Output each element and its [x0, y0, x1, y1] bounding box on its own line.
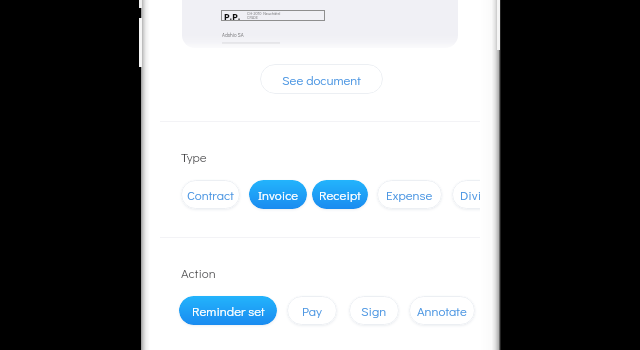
button[interactable]: Contract: [181, 180, 240, 209]
staticText: Pay: [302, 302, 322, 319]
button[interactable]: Annotate: [409, 296, 475, 325]
button[interactable]: Reminder set: [179, 296, 277, 325]
staticText: Action: [181, 264, 216, 281]
staticText: P.P.: [224, 11, 241, 24]
staticText: Reminder set: [192, 302, 265, 319]
button[interactable]: Invoice: [249, 180, 307, 209]
staticText: Type: [181, 148, 207, 165]
button[interactable]: Dividend: [452, 180, 480, 209]
staticText: CH-2010 Neuchâtel: [247, 11, 281, 16]
staticText: Sign: [361, 302, 387, 319]
button[interactable]: Pay: [287, 296, 337, 325]
button[interactable]: See document: [260, 64, 383, 94]
staticText: Annotate: [417, 302, 467, 319]
staticText: See document: [282, 71, 361, 88]
staticText: Contract: [187, 186, 234, 203]
staticText: Invoice: [258, 186, 299, 203]
staticText: CF&DE: [247, 15, 258, 20]
button[interactable]: Expense: [377, 180, 442, 209]
button[interactable]: Receipt: [312, 180, 368, 209]
staticText: Expense: [386, 186, 433, 203]
staticText: Adshio SA: [222, 32, 244, 39]
staticText: Receipt: [319, 186, 361, 203]
staticText: Dividend: [460, 186, 480, 203]
button[interactable]: Sign: [349, 296, 399, 325]
